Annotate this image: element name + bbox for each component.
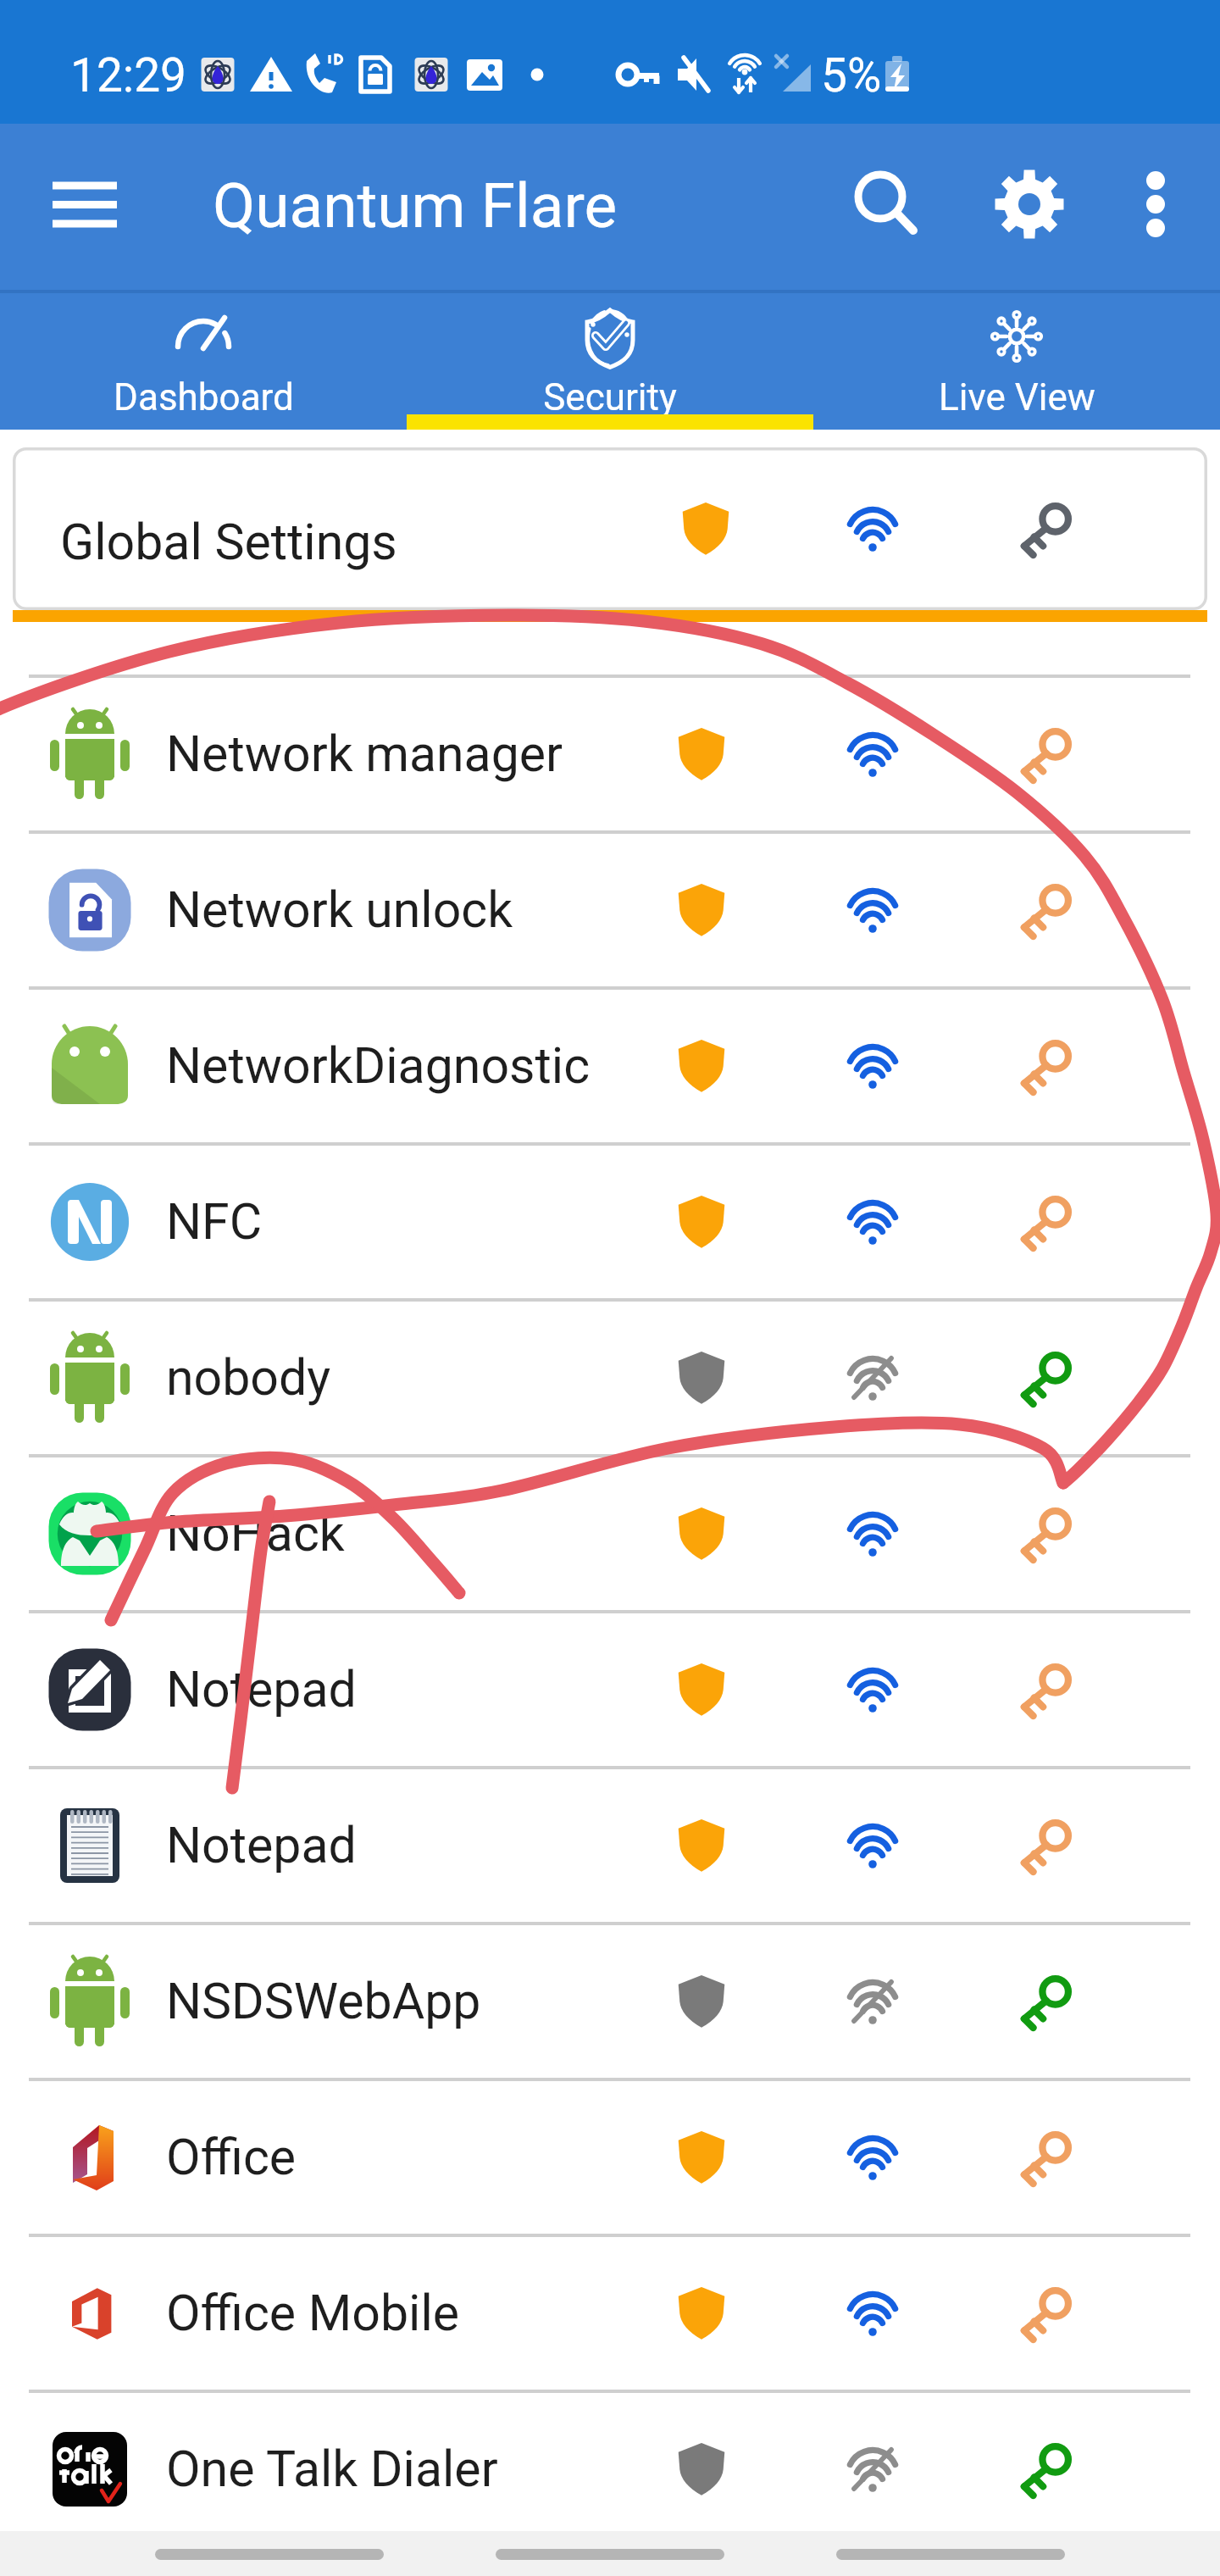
staticText: Security — [543, 375, 677, 419]
staticText: Office — [166, 2128, 297, 2186]
staticText: Notepad — [166, 1660, 357, 1718]
staticText: One Talk Dialer — [166, 2440, 498, 2498]
button[interactable]: NSDSWebApp — [0, 1925, 1220, 2078]
button[interactable]: Notepad — [0, 1613, 1220, 1766]
staticText: Live View — [939, 375, 1095, 419]
staticText: Office Mobile — [166, 2284, 460, 2342]
staticText: 5% — [821, 48, 882, 103]
staticText: Network manager — [166, 724, 563, 783]
button[interactable]: Global Settings — [13, 447, 1207, 610]
staticText: NFC — [166, 1192, 263, 1251]
button[interactable]: NoHack — [0, 1457, 1220, 1610]
button[interactable]: Dashboard — [0, 290, 407, 430]
staticText: Notepad — [166, 1816, 357, 1874]
button[interactable]: Settings — [968, 143, 1090, 265]
staticText: NoHack — [166, 1504, 345, 1563]
button[interactable]: Notepad — [0, 1769, 1220, 1922]
staticText: Dashboard — [114, 375, 294, 419]
button[interactable]: Open navigation menu — [22, 144, 144, 266]
button[interactable]: NetworkDiagnostic — [0, 990, 1220, 1142]
button[interactable]: Security — [407, 290, 813, 430]
button[interactable]: More options — [1095, 143, 1217, 265]
staticText: Quantum Flare — [213, 169, 618, 242]
staticText: nobody — [166, 1348, 331, 1407]
button[interactable]: Network unlock — [0, 834, 1220, 986]
button[interactable]: nobody — [0, 1302, 1220, 1454]
staticText: Network unlock — [166, 880, 513, 939]
button[interactable]: Live View — [813, 290, 1220, 430]
button[interactable]: Search — [826, 143, 948, 265]
button[interactable]: One Talk Dialer — [0, 2393, 1220, 2545]
button[interactable]: Network manager — [0, 678, 1220, 830]
staticText: NSDSWebApp — [166, 1972, 481, 2030]
button[interactable]: Office — [0, 2081, 1220, 2234]
staticText: NetworkDiagnostic — [166, 1036, 591, 1095]
button[interactable]: NFC — [0, 1146, 1220, 1298]
staticText: Global Settings — [60, 513, 397, 571]
staticText: 12:29 — [70, 48, 186, 103]
button[interactable]: Office Mobile — [0, 2237, 1220, 2390]
